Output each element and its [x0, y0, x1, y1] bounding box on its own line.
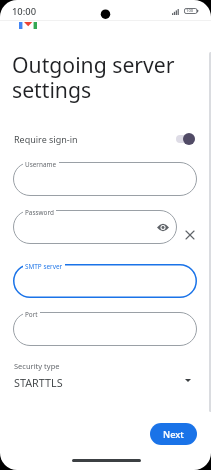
button[interactable]: Username	[13, 162, 197, 196]
button[interactable]: Next	[150, 423, 197, 445]
button[interactable]: SMTP server	[13, 264, 197, 298]
staticText: Security type	[14, 361, 60, 371]
staticText: Require sign-in	[14, 133, 78, 145]
button[interactable]: Port	[13, 312, 197, 346]
staticText: 100	[186, 8, 194, 14]
staticText: Password	[25, 208, 54, 217]
button[interactable]: Clear	[181, 226, 198, 243]
staticText: Next	[163, 428, 184, 441]
button[interactable]: Show password	[155, 220, 170, 235]
staticText: Port	[25, 310, 38, 319]
button[interactable]: Password	[13, 210, 177, 244]
staticText: Username	[25, 160, 57, 169]
button[interactable]: Require sign-in	[0, 128, 211, 150]
staticText: 10:00	[12, 5, 37, 18]
staticText: SMTP server	[25, 262, 63, 271]
button[interactable]: Security type	[0, 358, 211, 392]
staticText: STARTTLS	[14, 375, 63, 390]
staticText: Outgoing server settings	[12, 50, 175, 105]
